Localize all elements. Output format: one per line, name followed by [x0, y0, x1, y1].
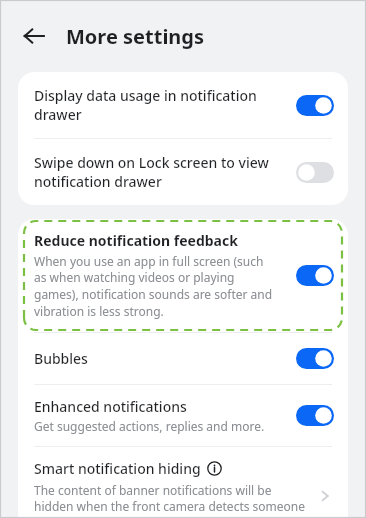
staticText: Swipe down on Lock screen to view notifi… [34, 153, 269, 191]
staticText: Enhanced notifications [34, 397, 187, 416]
staticText: The content of banner notifications will… [34, 482, 306, 518]
staticText: Get suggested actions, replies and more. [34, 418, 265, 434]
button[interactable]: Toggle on [296, 95, 334, 116]
button[interactable]: Enhanced notifications [18, 385, 348, 446]
staticText: Bubbles [34, 349, 88, 368]
button[interactable]: Toggle on [296, 405, 334, 426]
button[interactable]: Toggle on [296, 265, 334, 286]
button[interactable]: Back [12, 14, 56, 58]
button[interactable]: Bubbles [18, 333, 348, 384]
staticText: More settings [66, 23, 205, 50]
button[interactable]: Display data usage in notification drawe… [18, 72, 348, 138]
button[interactable]: Reduce notification feedback [18, 219, 348, 332]
button[interactable]: Toggle off [296, 162, 334, 183]
button[interactable]: Smart notification hiding [18, 447, 348, 518]
staticText: When you use an app in full screen (such… [34, 253, 273, 320]
button[interactable]: Swipe down on Lock screen to view notifi… [18, 139, 348, 205]
staticText: Reduce notification feedback [34, 231, 238, 250]
staticText: Display data usage in notification drawe… [34, 86, 257, 124]
button[interactable]: Toggle on [296, 348, 334, 369]
staticText: Smart notification hiding [34, 459, 201, 478]
